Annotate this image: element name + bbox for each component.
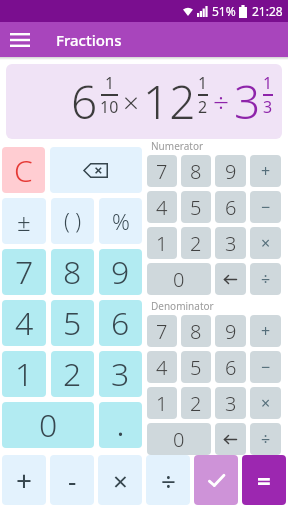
- button[interactable]: 3: [215, 227, 246, 259]
- button[interactable]: %: [99, 198, 142, 244]
- button[interactable]: C: [2, 147, 45, 193]
- button[interactable]: 4: [2, 300, 46, 346]
- button[interactable]: 3: [215, 387, 246, 419]
- button[interactable]: [10, 33, 30, 47]
- staticText: 4: [156, 354, 168, 381]
- button[interactable]: 6: [6, 64, 282, 139]
- staticText: +: [16, 461, 33, 499]
- button[interactable]: 1: [2, 351, 46, 397]
- button[interactable]: [215, 423, 246, 455]
- button[interactable]: 3: [99, 351, 142, 397]
- staticText: 8: [63, 250, 82, 294]
- button[interactable]: +: [250, 315, 281, 347]
- button[interactable]: 4: [147, 191, 177, 223]
- staticText: 12: [143, 70, 196, 133]
- button[interactable]: [194, 455, 238, 505]
- staticText: %: [112, 206, 130, 236]
- staticText: 6: [225, 354, 237, 381]
- staticText: 7: [156, 318, 168, 345]
- button[interactable]: ( ): [51, 198, 94, 244]
- staticText: 1: [15, 352, 34, 396]
- button[interactable]: 2: [181, 227, 211, 259]
- button[interactable]: 8: [51, 249, 94, 295]
- staticText: C: [14, 150, 33, 191]
- button[interactable]: ×: [250, 387, 281, 419]
- staticText: 7: [156, 158, 168, 185]
- staticText: 2: [198, 96, 208, 118]
- staticText: 8: [190, 158, 202, 185]
- staticText: 7: [15, 250, 34, 294]
- staticText: Denominator: [151, 299, 214, 313]
- staticText: ×: [113, 463, 128, 498]
- button[interactable]: 6: [215, 351, 246, 383]
- staticText: 9: [111, 250, 130, 294]
- staticText: 6: [225, 194, 237, 221]
- staticText: 9: [225, 158, 237, 185]
- staticText: 3: [263, 96, 273, 118]
- button[interactable]: =: [242, 455, 286, 505]
- staticText: 4: [15, 301, 34, 345]
- button[interactable]: 5: [181, 351, 211, 383]
- staticText: ×: [261, 392, 271, 414]
- button[interactable]: ±: [2, 198, 46, 244]
- staticText: ( ): [64, 207, 82, 236]
- staticText: Numerator: [151, 139, 204, 153]
- button[interactable]: 9: [99, 249, 142, 295]
- staticText: +: [261, 160, 271, 182]
- button[interactable]: −: [250, 351, 281, 383]
- button[interactable]: 0: [147, 263, 211, 295]
- button[interactable]: 7: [147, 315, 177, 347]
- staticText: 2: [190, 230, 202, 257]
- button[interactable]: 1: [147, 387, 177, 419]
- button[interactable]: 2: [181, 387, 211, 419]
- staticText: +: [261, 320, 271, 342]
- button[interactable]: ÷: [146, 455, 190, 505]
- button[interactable]: 6: [99, 300, 142, 346]
- staticText: 0: [173, 266, 185, 293]
- staticText: ÷: [161, 463, 176, 498]
- button[interactable]: [50, 147, 142, 193]
- staticText: ÷: [213, 83, 229, 121]
- staticText: ÷: [261, 428, 271, 450]
- staticText: 4: [156, 194, 168, 221]
- button[interactable]: 0: [147, 423, 211, 455]
- button[interactable]: ×: [250, 227, 281, 259]
- button[interactable]: 9: [215, 315, 246, 347]
- staticText: 3: [225, 390, 237, 417]
- staticText: ÷: [261, 268, 271, 290]
- button[interactable]: 8: [181, 315, 211, 347]
- staticText: 9: [225, 318, 237, 345]
- button[interactable]: 7: [2, 249, 46, 295]
- button[interactable]: 5: [51, 300, 94, 346]
- staticText: 5: [63, 301, 82, 345]
- button[interactable]: 8: [181, 155, 211, 187]
- button[interactable]: [215, 263, 246, 295]
- button[interactable]: 4: [147, 351, 177, 383]
- staticText: 2: [63, 352, 82, 396]
- button[interactable]: 6: [215, 191, 246, 223]
- button[interactable]: 5: [181, 191, 211, 223]
- staticText: 51%: [212, 3, 236, 19]
- button[interactable]: 7: [147, 155, 177, 187]
- button[interactable]: ÷: [250, 423, 281, 455]
- button[interactable]: +: [250, 155, 281, 187]
- button[interactable]: .: [99, 402, 142, 448]
- button[interactable]: 9: [215, 155, 246, 187]
- button[interactable]: −: [250, 191, 281, 223]
- staticText: 1: [198, 72, 208, 94]
- button[interactable]: ×: [98, 455, 142, 505]
- button[interactable]: +: [2, 455, 46, 505]
- button[interactable]: 2: [51, 351, 94, 397]
- staticText: 1: [105, 72, 115, 94]
- staticText: ×: [261, 232, 271, 254]
- staticText: 1: [156, 230, 168, 257]
- staticText: 8: [190, 318, 202, 345]
- staticText: 2: [190, 390, 202, 417]
- button[interactable]: ÷: [250, 263, 281, 295]
- button[interactable]: 1: [147, 227, 177, 259]
- staticText: 5: [190, 194, 202, 221]
- button[interactable]: 0: [2, 402, 94, 448]
- staticText: =: [257, 464, 271, 497]
- button[interactable]: -: [50, 455, 94, 505]
- staticText: ±: [17, 205, 31, 238]
